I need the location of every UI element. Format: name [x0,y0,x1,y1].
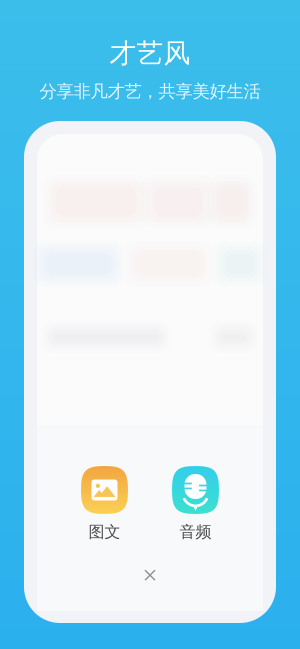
staticText: 音频 [179,522,211,542]
staticText: 图文 [88,522,120,542]
button[interactable]: Close [133,559,166,592]
button[interactable]: 图文 [81,466,128,542]
button[interactable]: 音频 [172,466,219,542]
staticText: 才艺风 [109,37,190,70]
staticText: 分享非凡才艺，共享美好生活 [39,81,260,102]
